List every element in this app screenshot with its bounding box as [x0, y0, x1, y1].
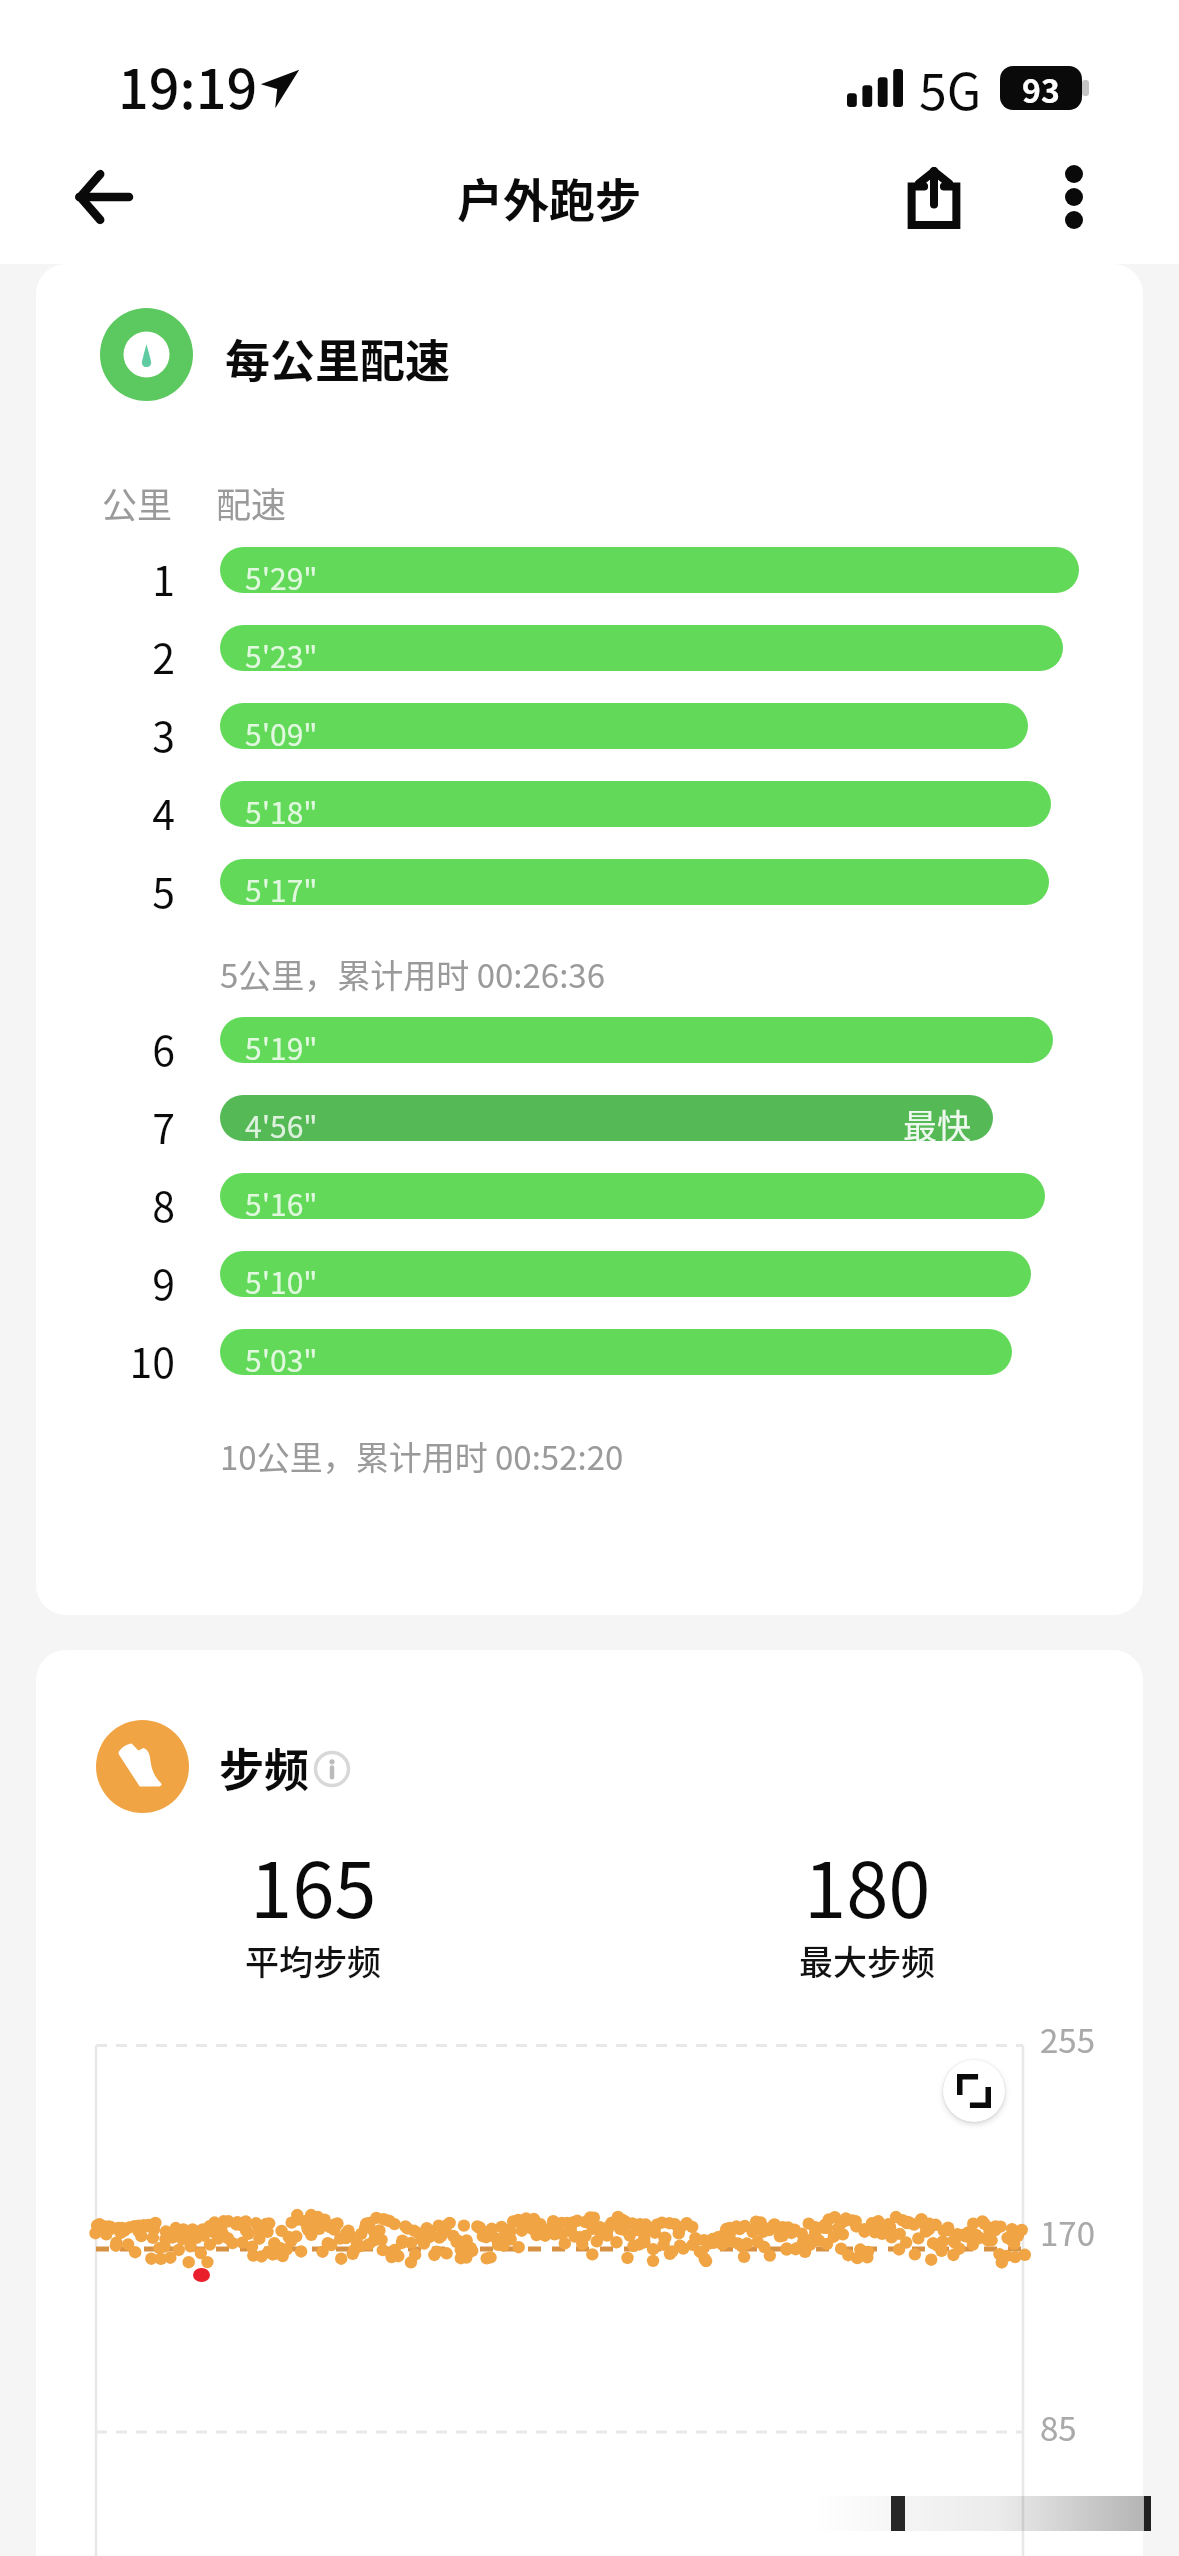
- staticText: 5'10": [245, 1259, 318, 1297]
- staticText: 10公里，累计用时 00:52:20: [220, 1432, 624, 1480]
- staticText: 最快: [903, 1100, 971, 1141]
- button[interactable]: More options: [1019, 142, 1129, 252]
- staticText: 5'09": [245, 711, 318, 749]
- button[interactable]: 5: [36, 843, 1143, 921]
- staticText: 5'16": [245, 1181, 318, 1219]
- staticText: 4: [36, 782, 175, 841]
- staticText: 10: [36, 1330, 175, 1389]
- staticText: 7: [36, 1096, 175, 1155]
- staticText: 255: [1040, 2015, 1095, 2063]
- staticText: 公里: [102, 477, 173, 528]
- staticText: 85: [1040, 2403, 1077, 2451]
- staticText: 每公里配速: [225, 326, 451, 391]
- staticText: 170: [1040, 2208, 1095, 2256]
- staticText: 平均步频: [245, 1936, 381, 1985]
- button[interactable]: Info about cadence: [314, 1751, 350, 1787]
- staticText: 5'17": [245, 867, 318, 905]
- staticText: 最大步频: [799, 1936, 935, 1985]
- staticText: 5'03": [245, 1337, 318, 1375]
- button[interactable]: 2: [36, 609, 1143, 687]
- staticText: 2: [36, 626, 175, 685]
- button[interactable]: 6: [36, 1001, 1143, 1079]
- staticText: 5G: [919, 52, 982, 124]
- staticText: 步频: [219, 1735, 310, 1800]
- staticText: 9: [36, 1252, 175, 1311]
- staticText: 5'29": [245, 555, 318, 593]
- staticText: 165: [250, 1830, 377, 1940]
- button[interactable]: 9: [36, 1235, 1143, 1313]
- button[interactable]: 4: [36, 765, 1143, 843]
- staticText: 5公里，累计用时 00:26:36: [220, 950, 605, 998]
- staticText: 4'56": [245, 1103, 318, 1141]
- staticText: 19:19: [118, 46, 258, 124]
- staticText: 93: [1022, 66, 1060, 110]
- staticText: 5'18": [245, 789, 318, 827]
- button[interactable]: 8: [36, 1157, 1143, 1235]
- staticText: 户外跑步: [457, 164, 641, 231]
- button[interactable]: 1: [36, 531, 1143, 609]
- staticText: 配速: [216, 477, 287, 528]
- staticText: 180: [804, 1830, 931, 1940]
- staticText: 3: [36, 704, 175, 763]
- button[interactable]: Expand chart: [943, 2060, 1005, 2122]
- button[interactable]: Back: [48, 142, 158, 252]
- staticText: 1: [36, 548, 175, 607]
- button[interactable]: Share: [879, 142, 989, 252]
- staticText: 8: [36, 1174, 175, 1233]
- staticText: 6: [36, 1018, 175, 1077]
- button[interactable]: 3: [36, 687, 1143, 765]
- staticText: 5: [36, 860, 175, 919]
- button[interactable]: 10: [36, 1313, 1143, 1391]
- button[interactable]: 7: [36, 1079, 1143, 1157]
- staticText: 5'19": [245, 1025, 318, 1063]
- staticText: 5'23": [245, 633, 318, 671]
